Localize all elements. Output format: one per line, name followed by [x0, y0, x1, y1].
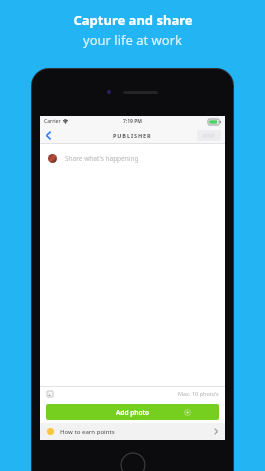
staticText: Capture and share: [73, 11, 193, 29]
button[interactable]: Photo: [45, 389, 55, 399]
staticText: POST: [203, 133, 215, 139]
staticText: Share what's happening: [65, 154, 139, 163]
staticText: Max. 10 photo's: [178, 390, 219, 397]
staticText: PUBLISHER: [113, 132, 152, 139]
button[interactable]: Home: [120, 452, 146, 471]
staticText: 7:19 PM: [123, 118, 142, 125]
button[interactable]: Back: [40, 127, 56, 144]
button[interactable]: How to earn points: [40, 423, 225, 440]
staticText: How to earn points: [60, 428, 115, 436]
staticText: Add photo: [116, 408, 150, 417]
button[interactable]: Share what's happening: [40, 144, 225, 172]
staticText: your life at work: [83, 31, 182, 49]
button[interactable]: Add photo: [46, 404, 219, 420]
staticText: Carrier: [44, 118, 61, 125]
button[interactable]: POST: [197, 130, 221, 141]
